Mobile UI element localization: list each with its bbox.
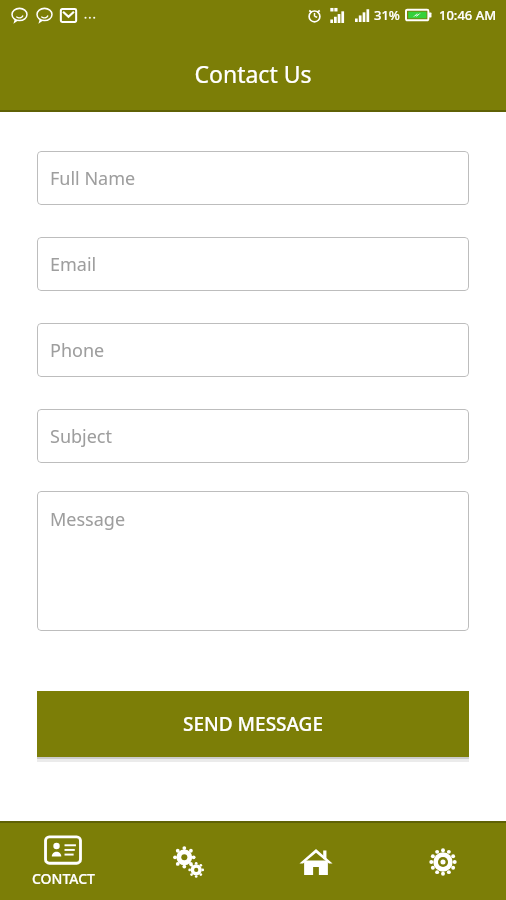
button[interactable]: Services <box>126 823 252 900</box>
button[interactable]: Settings <box>379 823 506 900</box>
button[interactable]: CONTACT <box>0 823 126 900</box>
staticText: Message <box>50 507 126 532</box>
staticText: Phone <box>50 338 105 363</box>
staticText: 31% <box>374 6 400 24</box>
button[interactable]: Subject <box>37 409 469 463</box>
staticText: Email <box>50 252 97 277</box>
staticText: 10:46 AM <box>439 6 497 24</box>
staticText: Full Name <box>50 166 136 191</box>
button[interactable]: Email <box>37 237 469 291</box>
staticText: SEND MESSAGE <box>183 711 323 737</box>
button[interactable]: SEND MESSAGE <box>37 691 469 757</box>
button[interactable]: Full Name <box>37 151 469 205</box>
staticText: Contact Us <box>0 58 506 89</box>
button[interactable]: Home <box>252 823 379 900</box>
button[interactable]: Phone <box>37 323 469 377</box>
staticText: Subject <box>50 424 113 449</box>
staticText: CONTACT <box>32 869 95 888</box>
button[interactable]: Message <box>37 491 469 631</box>
